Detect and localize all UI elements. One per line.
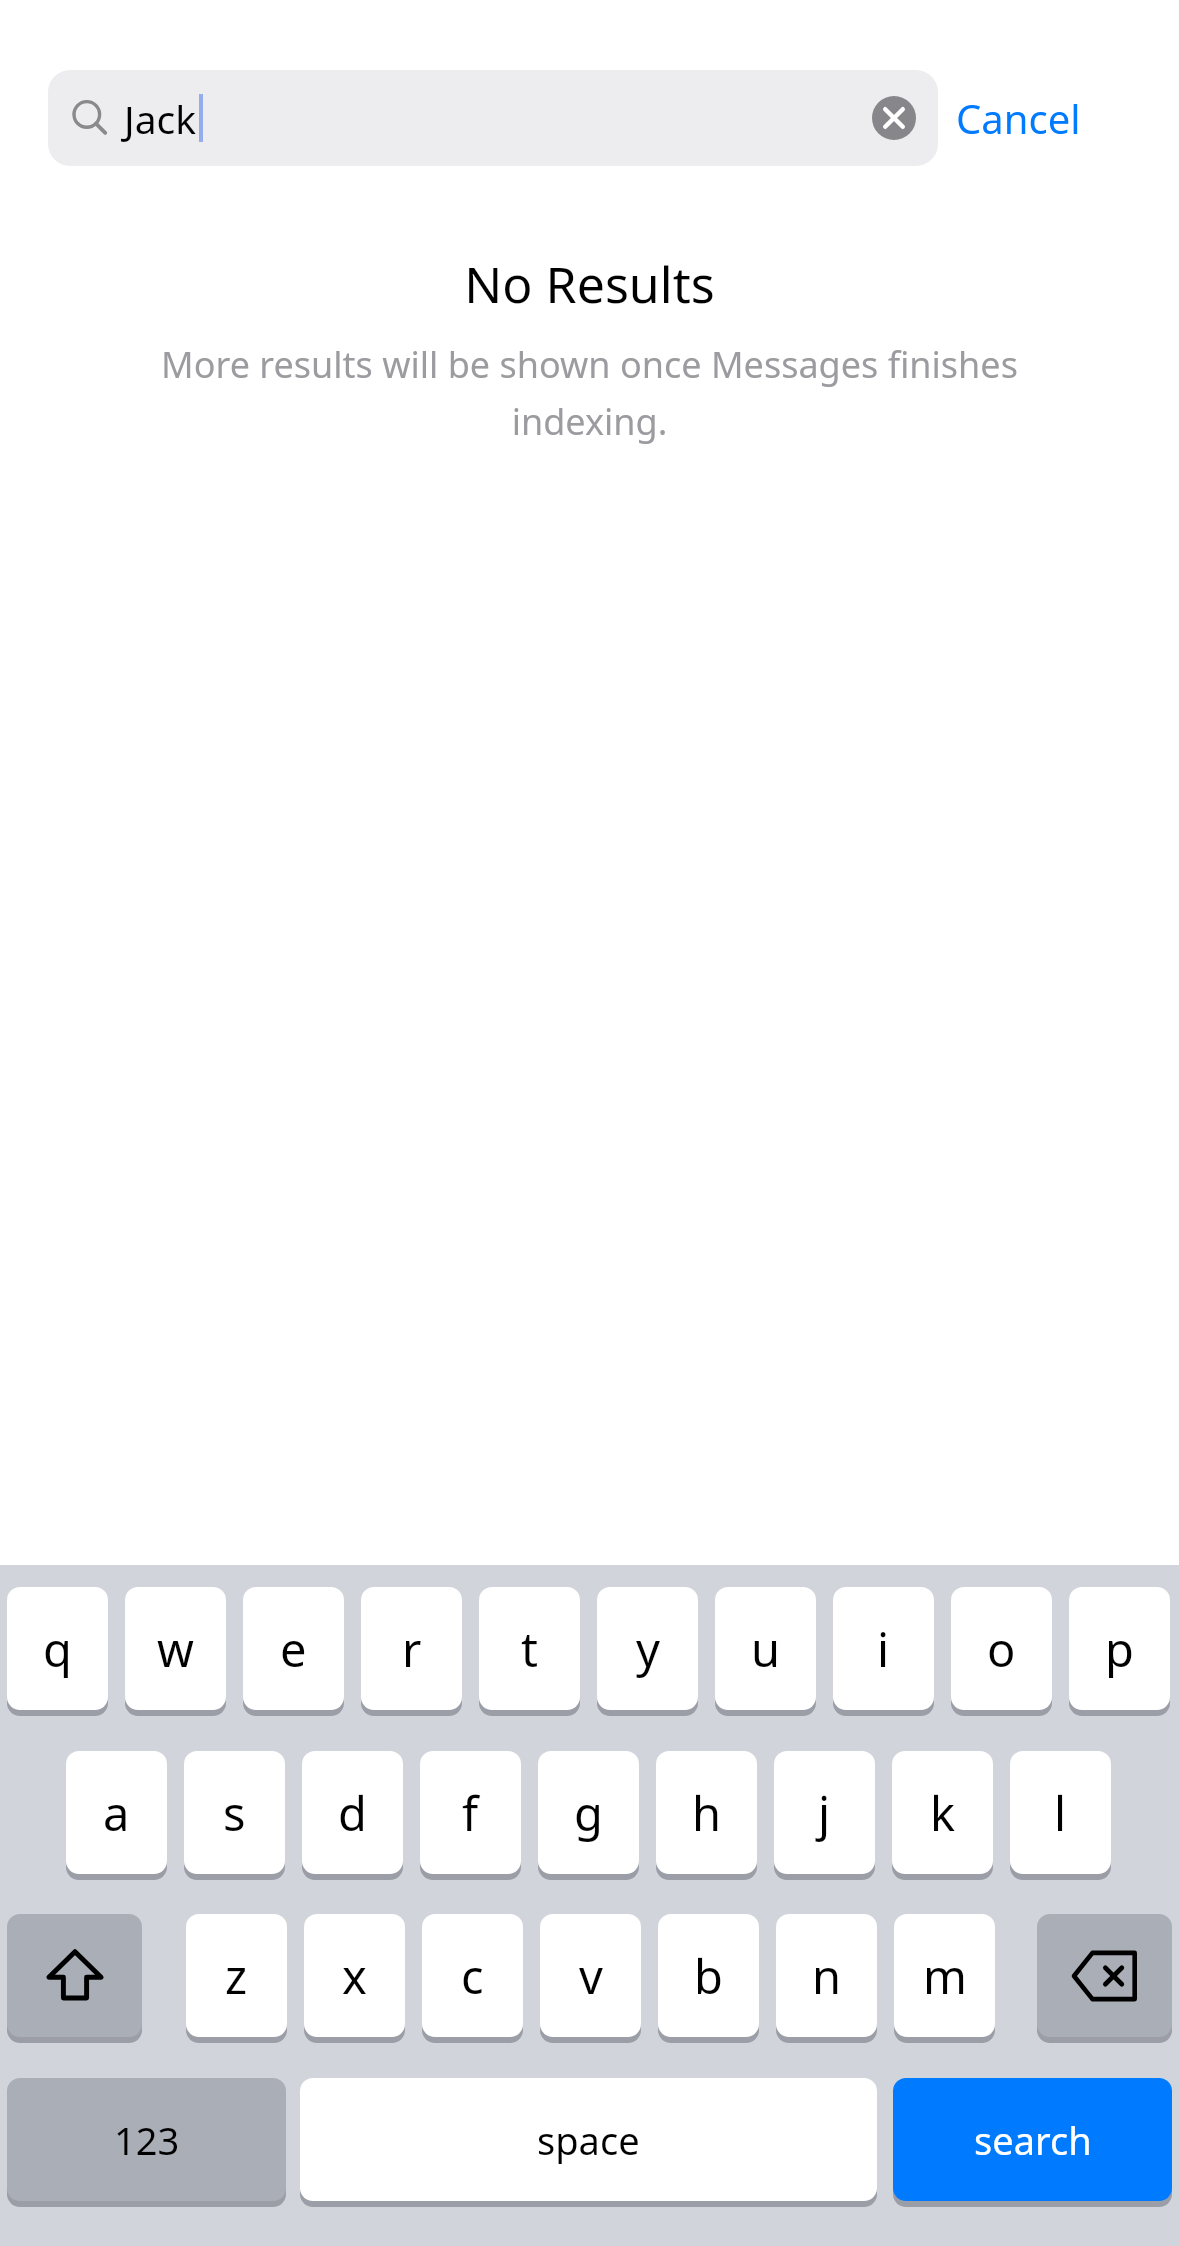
button[interactable]: u: [715, 1587, 816, 1710]
button[interactable]: l: [1010, 1751, 1111, 1874]
staticText: s: [223, 1781, 246, 1845]
button[interactable]: e: [243, 1587, 344, 1710]
button[interactable]: Space: [300, 2078, 877, 2201]
staticText: v: [579, 1944, 603, 2008]
staticText: u: [751, 1617, 781, 1681]
staticText: j: [818, 1781, 831, 1845]
button[interactable]: r: [361, 1587, 462, 1710]
staticText: y: [636, 1617, 660, 1681]
staticText: m: [923, 1944, 967, 2008]
staticText: Jack: [124, 92, 197, 145]
staticText: g: [574, 1781, 603, 1845]
staticText: b: [694, 1944, 723, 2008]
staticText: h: [692, 1781, 722, 1845]
button[interactable]: g: [538, 1751, 639, 1874]
button[interactable]: Clear text: [870, 94, 918, 142]
button[interactable]: w: [125, 1587, 226, 1710]
staticText: search: [974, 2114, 1092, 2166]
button[interactable]: x: [304, 1914, 405, 2037]
staticText: i: [877, 1617, 890, 1681]
button[interactable]: Cancel: [938, 81, 1099, 155]
staticText: Cancel: [956, 91, 1081, 145]
button[interactable]: Backspace: [1037, 1914, 1172, 2037]
button[interactable]: c: [422, 1914, 523, 2037]
button[interactable]: o: [951, 1587, 1052, 1710]
staticText: q: [43, 1617, 72, 1681]
button[interactable]: Shift: [7, 1914, 142, 2037]
button[interactable]: a: [66, 1751, 167, 1874]
button[interactable]: p: [1069, 1587, 1170, 1710]
staticText: r: [402, 1617, 422, 1681]
staticText: t: [521, 1617, 538, 1681]
staticText: c: [461, 1944, 484, 2008]
button[interactable]: Jack: [48, 70, 938, 166]
button[interactable]: m: [894, 1914, 995, 2037]
staticText: No Results: [464, 250, 715, 318]
staticText: a: [103, 1781, 130, 1845]
staticText: d: [338, 1781, 367, 1845]
staticText: x: [342, 1944, 367, 2008]
staticText: z: [225, 1944, 248, 2008]
staticText: f: [462, 1781, 479, 1845]
staticText: o: [987, 1617, 1016, 1681]
button[interactable]: y: [597, 1587, 698, 1710]
staticText: w: [157, 1617, 194, 1681]
button[interactable]: z: [186, 1914, 287, 2037]
button[interactable]: v: [540, 1914, 641, 2037]
button[interactable]: q: [7, 1587, 108, 1710]
button[interactable]: f: [420, 1751, 521, 1874]
button[interactable]: k: [892, 1751, 993, 1874]
staticText: n: [812, 1944, 842, 2008]
staticText: l: [1054, 1781, 1067, 1845]
staticText: 123: [114, 2114, 180, 2166]
button[interactable]: b: [658, 1914, 759, 2037]
staticText: space: [537, 2114, 640, 2166]
button[interactable]: d: [302, 1751, 403, 1874]
button[interactable]: i: [833, 1587, 934, 1710]
staticText: p: [1105, 1617, 1134, 1681]
button[interactable]: n: [776, 1914, 877, 2037]
staticText: e: [280, 1617, 307, 1681]
button[interactable]: t: [479, 1587, 580, 1710]
button[interactable]: Search: [893, 2078, 1172, 2201]
button[interactable]: Numbers: [7, 2078, 286, 2201]
button[interactable]: h: [656, 1751, 757, 1874]
staticText: More results will be shown once Messages…: [150, 340, 1029, 446]
staticText: k: [930, 1781, 956, 1845]
button[interactable]: j: [774, 1751, 875, 1874]
button[interactable]: s: [184, 1751, 285, 1874]
